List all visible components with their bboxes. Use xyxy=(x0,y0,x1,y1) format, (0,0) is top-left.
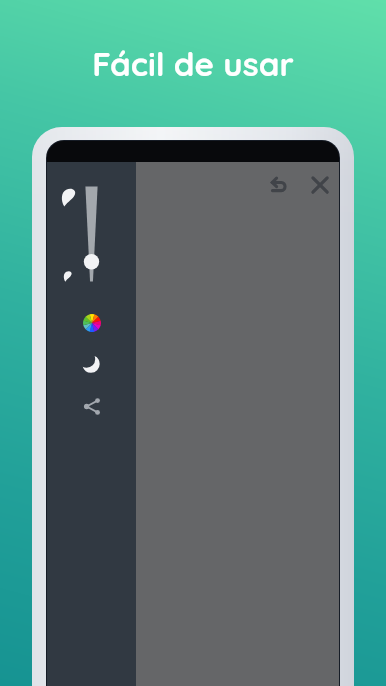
staticText: Fácil de usar xyxy=(0,43,386,686)
button[interactable]: Brush size max xyxy=(59,187,79,207)
button[interactable]: Brush size slider xyxy=(79,180,104,292)
button[interactable]: Brush size min xyxy=(58,266,78,286)
button[interactable]: Night mode xyxy=(81,354,101,374)
button[interactable]: Undo xyxy=(270,174,294,198)
button[interactable]: Close xyxy=(308,173,332,197)
button[interactable]: Share xyxy=(82,396,103,417)
button[interactable]: Color xyxy=(82,313,102,333)
